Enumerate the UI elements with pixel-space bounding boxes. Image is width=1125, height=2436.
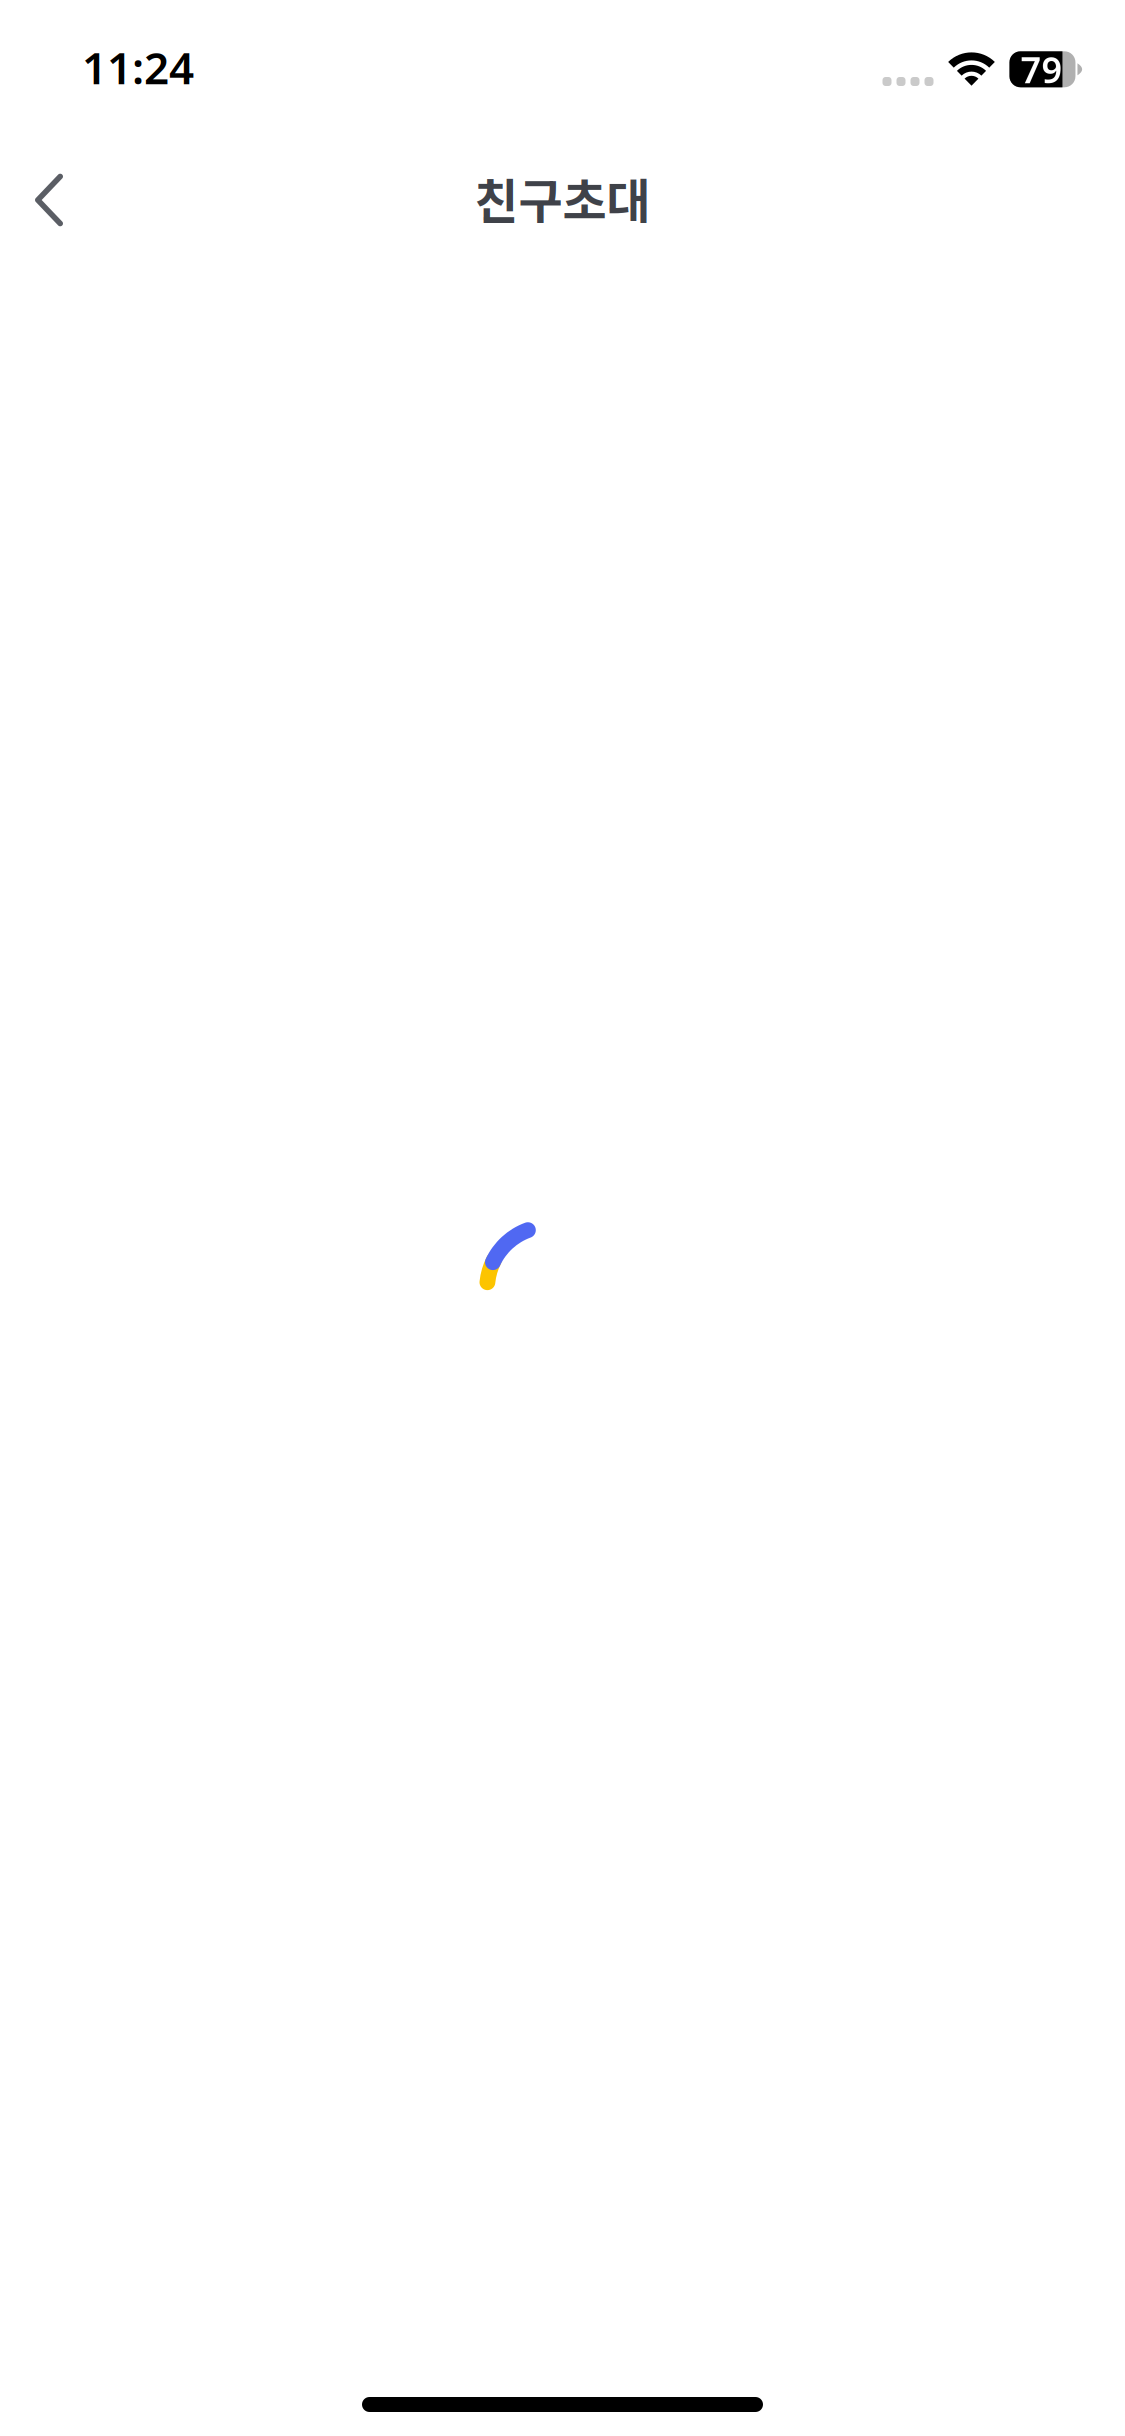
staticText: 11:24	[82, 38, 194, 96]
button[interactable]: Back	[1, 152, 97, 248]
staticText: 79	[1020, 45, 1062, 93]
staticText: 친구초대	[474, 163, 650, 233]
